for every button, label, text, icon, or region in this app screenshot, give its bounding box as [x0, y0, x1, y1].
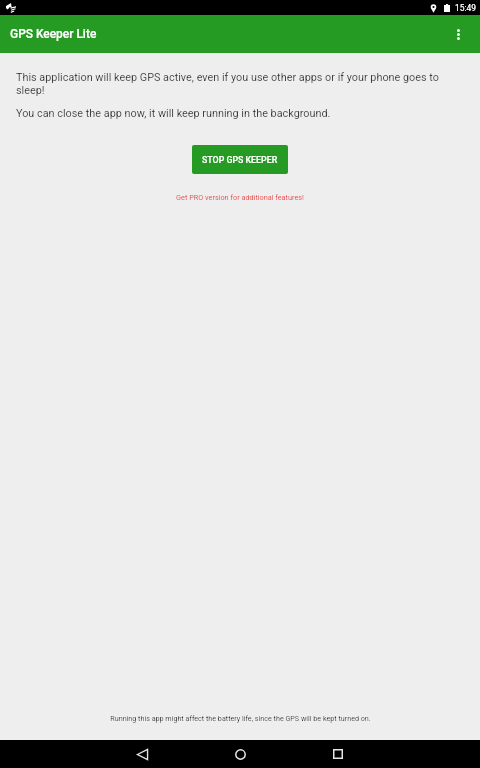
- staticText: STOP GPS KEEPER: [202, 155, 278, 165]
- button[interactable]: STOP GPS KEEPER: [192, 145, 288, 174]
- staticText: Running this app might affect the batter…: [110, 714, 371, 722]
- button[interactable]: Recent apps: [289, 740, 387, 768]
- staticText: GPS Keeper Lite: [10, 27, 97, 41]
- button[interactable]: More options: [439, 15, 477, 53]
- staticText: 15:49: [455, 3, 477, 13]
- button[interactable]: Get PRO version for additional features!: [176, 193, 304, 202]
- staticText: This application will keep GPS active, e…: [16, 71, 464, 97]
- button[interactable]: Home: [191, 740, 289, 768]
- staticText: You can close the app now, it will keep …: [16, 107, 331, 120]
- button[interactable]: Back: [93, 740, 191, 768]
